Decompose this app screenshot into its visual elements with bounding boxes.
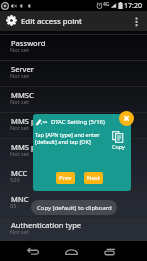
staticText: 05 — [10, 202, 17, 210]
staticText: Next — [87, 174, 101, 182]
button[interactable]: Next — [84, 172, 103, 184]
staticText: 520 — [10, 176, 20, 184]
staticText: MMS proxy — [11, 116, 51, 126]
staticText: 4G — [103, 1, 110, 8]
button[interactable]: MMS proxy — [0, 113, 147, 138]
button[interactable]: Authentication type — [0, 217, 147, 242]
staticText: Copy — [112, 143, 125, 150]
staticText: Server — [11, 64, 34, 74]
button[interactable]: Copy — [106, 131, 130, 150]
staticText: Not set — [10, 150, 29, 158]
other: App icon — [6, 15, 17, 26]
button[interactable]: MNC — [0, 191, 147, 216]
button[interactable]: More options — [129, 11, 143, 31]
button[interactable]: DTAC Setting (5/16) — [33, 114, 131, 191]
staticText: Not set — [10, 46, 29, 54]
staticText: Authentication type — [11, 220, 82, 230]
button[interactable]: Server — [0, 61, 147, 86]
staticText: Not set — [10, 228, 29, 236]
staticText: DTAC Setting (5/16) — [51, 118, 105, 126]
button[interactable]: Prev — [56, 172, 75, 184]
staticText: MMS port — [11, 142, 47, 152]
button[interactable]: App icon — [0, 11, 147, 31]
staticText: Copy [default] to clipboard — [37, 204, 112, 212]
button[interactable]: MMSC — [0, 87, 147, 112]
staticText: 17:20 — [124, 1, 142, 11]
button[interactable]: Close — [119, 111, 134, 126]
staticText: MNC — [11, 194, 29, 204]
staticText: Not set — [10, 72, 29, 80]
button[interactable]: MCC — [0, 165, 147, 190]
button[interactable]: Recents — [99, 243, 120, 259]
button[interactable]: Password — [0, 35, 147, 60]
button[interactable]: MMS port — [0, 139, 147, 164]
staticText: Not set — [10, 124, 29, 132]
button[interactable]: Back — [22, 243, 43, 259]
staticText: MMSC — [11, 90, 34, 100]
staticText: MCC — [11, 168, 28, 178]
staticText: Tap [APN type] and enter [default] and t… — [35, 131, 100, 145]
staticText: Not set — [10, 98, 29, 106]
staticText: Password — [11, 38, 46, 48]
staticText: Prev — [59, 174, 72, 182]
staticText: Edit access point — [21, 16, 82, 27]
button[interactable]: Home — [61, 243, 82, 259]
